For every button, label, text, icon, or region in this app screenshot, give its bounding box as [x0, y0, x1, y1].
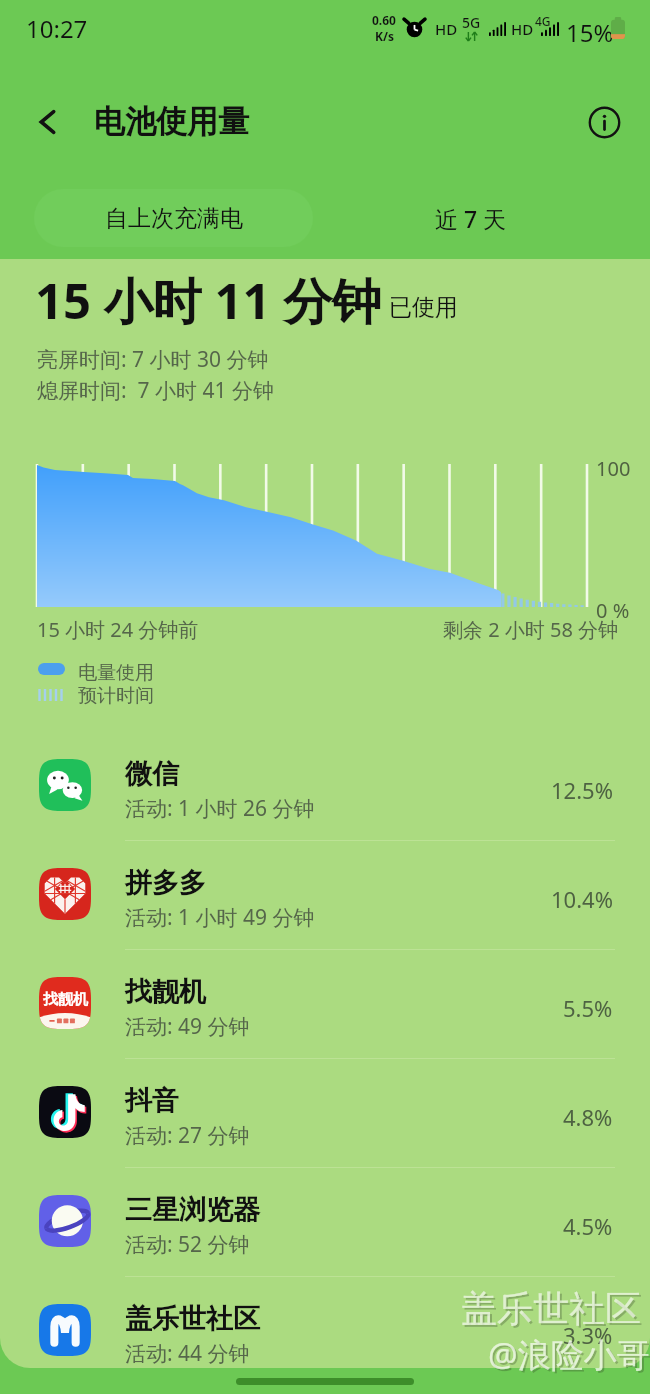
staticText: 找靓机	[125, 975, 206, 1009]
staticText: 电量使用	[78, 661, 154, 685]
button[interactable]: 拼多多	[0, 840, 650, 949]
staticText: 12.5%	[551, 775, 613, 805]
staticText: 15%	[566, 16, 614, 49]
staticText: 5.5%	[563, 993, 613, 1023]
button[interactable]: 近 7 天	[325, 189, 616, 247]
staticText: 10:27	[26, 12, 88, 45]
button[interactable]: 盖乐世社区	[0, 1276, 650, 1368]
staticText: 电池使用量	[94, 102, 249, 141]
staticText: 活动: 44 分钟	[125, 1339, 250, 1368]
staticText: 预计时间	[78, 684, 154, 708]
staticText: 4.8%	[563, 1102, 613, 1132]
staticText: 活动: 1 小时 49 分钟	[125, 903, 315, 932]
button[interactable]: Information	[580, 98, 628, 146]
staticText: 活动: 52 分钟	[125, 1230, 250, 1259]
button[interactable]: 抖音	[0, 1058, 650, 1167]
staticText: 活动: 27 分钟	[125, 1121, 250, 1150]
staticText: 活动: 49 分钟	[125, 1012, 250, 1041]
staticText: HD	[435, 19, 458, 39]
staticText: 微信	[125, 757, 179, 791]
staticText: 15 小时 24 分钟前	[37, 616, 199, 643]
staticText: 近 7 天	[435, 203, 507, 234]
staticText: 4G	[535, 13, 551, 29]
staticText: 10.4%	[551, 884, 613, 914]
staticText: 0 %	[596, 597, 630, 624]
staticText: K/s	[375, 28, 394, 44]
staticText: HD	[511, 19, 534, 39]
staticText: 活动: 1 小时 26 分钟	[125, 794, 315, 823]
staticText: 5G	[462, 13, 481, 32]
button[interactable]: 找靓机	[0, 949, 650, 1058]
button[interactable]: 微信	[0, 731, 650, 840]
staticText: 15 小时 11 分钟	[35, 267, 382, 334]
staticText: 盖乐世社区	[461, 1286, 641, 1331]
button[interactable]: 三星浏览器	[0, 1167, 650, 1276]
staticText: 拼多多	[125, 866, 206, 900]
staticText: 100	[596, 455, 631, 482]
staticText: 亮屏时间: 7 小时 30 分钟	[37, 345, 269, 374]
staticText: 找靓机	[43, 990, 88, 1009]
staticText: 熄屏时间: 7 小时 41 分钟	[37, 376, 274, 405]
staticText: 3.3%	[563, 1320, 613, 1350]
staticText: 抖音	[125, 1084, 179, 1118]
staticText: 4.5%	[563, 1211, 613, 1241]
staticText: 已使用	[389, 293, 458, 322]
staticText: 0.60	[372, 12, 396, 28]
button[interactable]: Back	[24, 98, 72, 146]
staticText: 剩余 2 小时 58 分钟	[443, 616, 619, 643]
staticText: @浪险小哥	[488, 1332, 650, 1377]
staticText: 盖乐世社区	[463, 1288, 643, 1333]
staticText: 盖乐世社区	[125, 1302, 260, 1336]
staticText: 三星浏览器	[125, 1193, 260, 1227]
staticText: @浪险小哥	[490, 1334, 650, 1379]
button[interactable]: 自上次充满电	[34, 189, 313, 247]
staticText: 自上次充满电	[105, 204, 243, 233]
